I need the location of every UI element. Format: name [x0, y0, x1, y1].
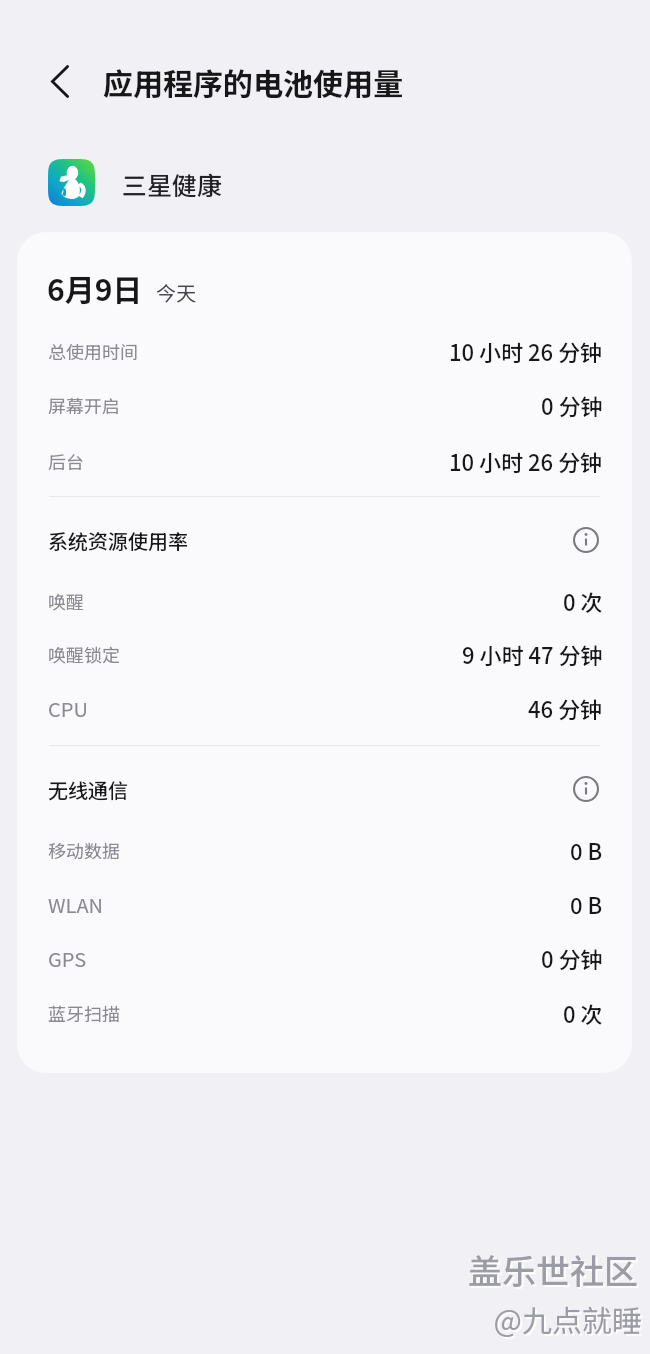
staticText: GPS [48, 944, 87, 973]
button[interactable]: 无线通信 [17, 767, 632, 811]
staticText: 总使用时间 [48, 338, 138, 364]
staticText: 0 次 [563, 585, 603, 617]
staticText: 9 小时 47 分钟 [462, 638, 603, 670]
staticText: 0 B [570, 834, 603, 866]
button[interactable]: 后台 [17, 434, 632, 488]
button[interactable]: GPS [17, 931, 632, 985]
button[interactable]: 蓝牙扫描 [17, 986, 632, 1040]
button[interactable]: WLAN [17, 877, 632, 931]
staticText: 0 分钟 [541, 389, 603, 421]
staticText: 唤醒锁定 [48, 641, 120, 667]
staticText: 盖乐世社区 [468, 1245, 638, 1294]
staticText: 屏幕开启 [48, 392, 120, 418]
staticText: 系统资源使用率 [48, 526, 188, 555]
button[interactable]: CPU [17, 681, 632, 735]
staticText: 0 分钟 [541, 942, 603, 974]
staticText: 今天 [156, 278, 196, 307]
button[interactable]: 唤醒 [17, 574, 632, 628]
staticText: 唤醒 [48, 588, 84, 614]
staticText: 0 B [570, 888, 603, 920]
staticText: 移动数据 [48, 837, 120, 863]
staticText: @九点就睡 [495, 1299, 644, 1342]
staticText: 无线通信 [48, 775, 128, 804]
staticText: @九点就睡 [493, 1297, 642, 1340]
button[interactable]: 总使用时间 [17, 324, 632, 378]
staticText: 10 小时 26 分钟 [449, 445, 603, 477]
button[interactable]: Info [568, 771, 604, 807]
staticText: 10 小时 26 分钟 [449, 335, 603, 367]
staticText: 应用程序的电池使用量 [103, 60, 403, 103]
button[interactable]: 系统资源使用率 [17, 518, 632, 562]
staticText: 三星健康 [122, 166, 223, 202]
button[interactable]: 三星健康 [0, 147, 650, 217]
staticText: 6月9日 [47, 266, 143, 309]
staticText: WLAN [48, 890, 104, 919]
button[interactable]: 屏幕开启 [17, 378, 632, 432]
staticText: CPU [48, 694, 88, 723]
staticText: 0 次 [563, 997, 603, 1029]
button[interactable]: Info [568, 522, 604, 558]
staticText: 盖乐世社区 [470, 1247, 640, 1296]
button[interactable]: 移动数据 [17, 823, 632, 877]
staticText: 蓝牙扫描 [48, 1000, 120, 1026]
staticText: 后台 [48, 448, 84, 474]
button[interactable]: Back [36, 57, 84, 105]
staticText: 46 分钟 [528, 692, 603, 724]
button[interactable]: 唤醒锁定 [17, 627, 632, 681]
